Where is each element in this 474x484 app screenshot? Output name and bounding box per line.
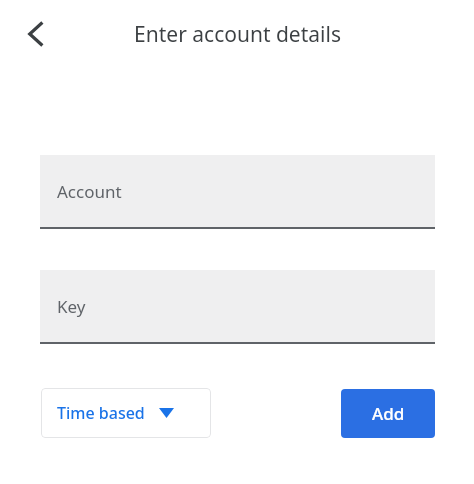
staticText: Add — [372, 402, 405, 425]
button[interactable]: Add — [341, 389, 435, 438]
staticText: Enter account details — [134, 20, 341, 49]
staticText: Key — [57, 295, 86, 318]
button[interactable]: Back — [12, 10, 60, 58]
button[interactable]: Key — [40, 270, 435, 344]
staticText: Time based — [57, 402, 145, 424]
staticText: Account — [57, 180, 122, 203]
button[interactable]: Time based — [41, 388, 211, 438]
button[interactable]: Account — [40, 155, 435, 229]
